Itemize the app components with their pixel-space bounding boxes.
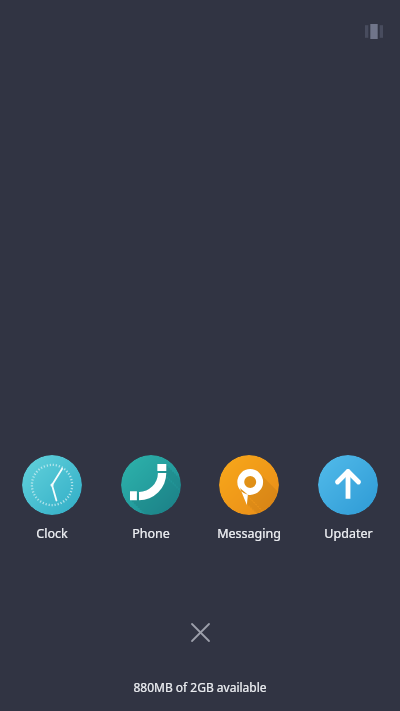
button[interactable]: Messaging xyxy=(203,455,295,542)
button[interactable]: Recent apps xyxy=(359,16,389,46)
button[interactable]: Close xyxy=(181,613,219,651)
staticText: Phone xyxy=(132,525,170,542)
button[interactable]: Clock xyxy=(6,455,98,542)
staticText: 880MB of 2GB available xyxy=(133,679,267,695)
button[interactable]: Phone xyxy=(105,455,197,542)
staticText: Updater xyxy=(324,525,373,542)
button[interactable]: Updater xyxy=(302,455,394,542)
staticText: Messaging xyxy=(217,525,281,542)
staticText: Clock xyxy=(36,525,68,542)
